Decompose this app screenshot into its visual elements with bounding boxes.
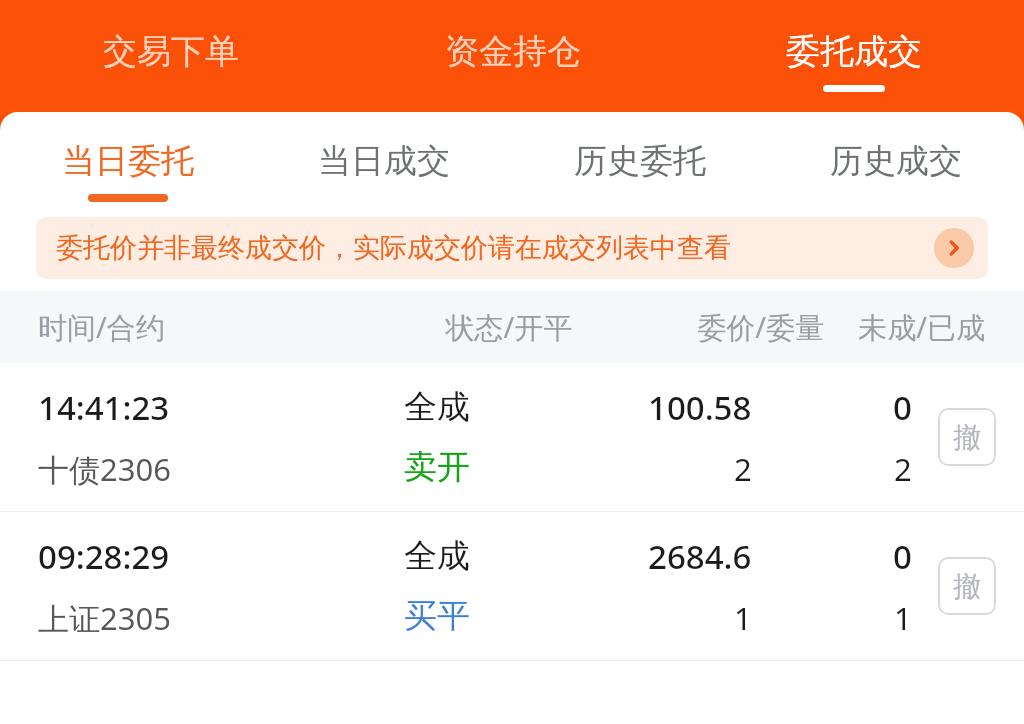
staticText: 委价/委量 — [614, 307, 824, 347]
button[interactable]: 当日委托 — [0, 112, 256, 217]
button[interactable]: 委托价并非最终成交价，实际成交价请在成交列表中查看 — [36, 217, 988, 279]
button[interactable]: 资金持仓 — [342, 0, 683, 112]
staticText: 14:41:23 — [38, 385, 170, 430]
staticText: 资金持仓 — [445, 30, 581, 73]
staticText: 2684.6 — [648, 534, 752, 579]
staticText: 买平 — [404, 595, 470, 637]
staticText: 0 — [893, 385, 912, 430]
staticText: 十债2306 — [38, 448, 171, 490]
staticText: 全成 — [404, 535, 470, 577]
staticText: 委托价并非最终成交价，实际成交价请在成交列表中查看 — [56, 231, 731, 265]
button[interactable]: 查看详情 — [934, 228, 974, 268]
staticText: 当日成交 — [318, 140, 450, 182]
staticText: 2 — [734, 448, 752, 490]
staticText: 委托成交 — [786, 30, 922, 73]
staticText: 撤 — [953, 569, 981, 604]
staticText: 2 — [894, 448, 912, 490]
button[interactable]: 交易下单 — [0, 0, 342, 112]
button[interactable]: 历史委托 — [512, 112, 768, 217]
staticText: 1 — [734, 597, 752, 639]
staticText: 100.58 — [648, 385, 752, 430]
button[interactable]: 历史成交 — [768, 112, 1024, 217]
staticText: 09:28:29 — [38, 534, 170, 579]
button[interactable]: 撤 — [938, 557, 996, 615]
staticText: 撤 — [953, 420, 981, 455]
staticText: 卖开 — [404, 446, 470, 488]
button[interactable]: 09:28:29 — [0, 512, 1024, 660]
staticText: 交易下单 — [103, 30, 239, 73]
staticText: 状态/开平 — [404, 307, 614, 347]
button[interactable]: 当日成交 — [256, 112, 512, 217]
staticText: 上证2305 — [38, 597, 171, 639]
staticText: 时间/合约 — [38, 307, 404, 347]
staticText: 历史成交 — [830, 140, 962, 182]
button[interactable]: 撤 — [938, 408, 996, 466]
button[interactable]: 委托成交 — [683, 0, 1024, 112]
staticText: 未成/已成 — [824, 307, 985, 347]
staticText: 1 — [894, 597, 912, 639]
staticText: 当日委托 — [62, 140, 194, 182]
staticText: 全成 — [404, 386, 470, 428]
staticText: 历史委托 — [574, 140, 706, 182]
button[interactable]: 14:41:23 — [0, 363, 1024, 511]
staticText: 0 — [893, 534, 912, 579]
